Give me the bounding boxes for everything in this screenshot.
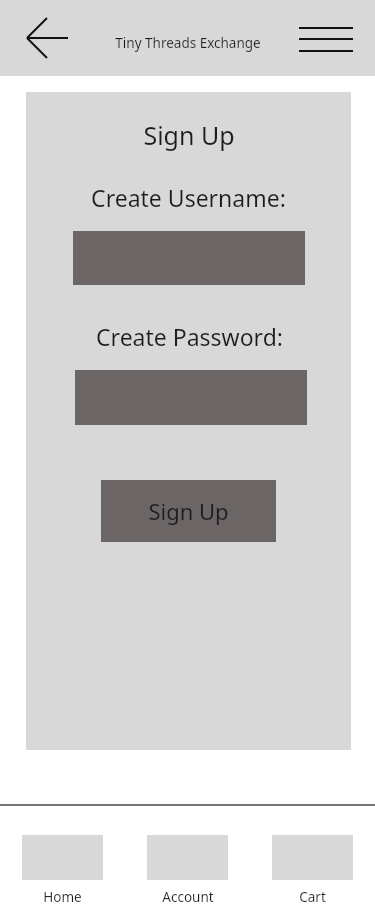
button[interactable]: Cart — [250, 806, 375, 916]
button[interactable]: Account — [125, 806, 250, 916]
staticText: Sign Up — [143, 118, 235, 152]
staticText: Create Username: — [91, 182, 286, 213]
button[interactable]: Back — [18, 12, 74, 64]
button[interactable]: Sign Up — [101, 480, 276, 542]
staticText: Cart — [299, 888, 326, 906]
button[interactable]: Home — [0, 806, 125, 916]
staticText: Account — [162, 888, 214, 906]
staticText: Create Password: — [96, 321, 283, 352]
staticText: Home — [43, 888, 82, 906]
button[interactable]: Menu — [299, 26, 353, 58]
staticText: Tiny Threads Exchange — [115, 34, 261, 52]
staticText: Sign Up — [148, 496, 229, 526]
